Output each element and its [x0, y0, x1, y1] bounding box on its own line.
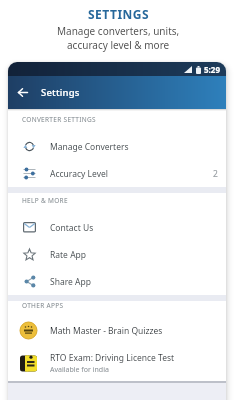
- button[interactable]: Rate App: [8, 241, 226, 268]
- staticText: Rate App: [50, 249, 87, 261]
- staticText: 2: [213, 168, 218, 180]
- button[interactable]: Contact Us: [8, 214, 226, 241]
- staticText: Settings: [41, 86, 80, 99]
- button[interactable]: Share App: [8, 268, 226, 295]
- staticText: Contact Us: [50, 222, 94, 234]
- staticText: Share App: [50, 276, 91, 288]
- staticText: Available for india: [50, 365, 109, 375]
- staticText: HELP & MORE: [22, 196, 68, 205]
- button[interactable]: Manage Converters: [8, 133, 226, 160]
- staticText: accuracy level & more: [67, 38, 170, 52]
- button[interactable]: Math Master - Brain Quizzes: [8, 316, 226, 345]
- staticText: Manage converters, units,: [57, 24, 180, 38]
- staticText: SETTINGS: [88, 6, 150, 22]
- staticText: RTO Exam: Driving Licence Test: [50, 352, 175, 364]
- button[interactable]: RTO Exam: Driving Licence Test: [8, 345, 226, 381]
- staticText: 5:29: [204, 64, 220, 75]
- staticText: OTHER APPS: [22, 301, 64, 310]
- staticText: Accuracy Level: [50, 168, 108, 180]
- button[interactable]: Settings: [8, 76, 226, 109]
- button[interactable]: Accuracy Level: [8, 160, 226, 187]
- staticText: Manage Converters: [50, 141, 129, 153]
- staticText: CONVERTER SETTINGS: [22, 115, 96, 124]
- staticText: Math Master - Brain Quizzes: [50, 325, 163, 337]
